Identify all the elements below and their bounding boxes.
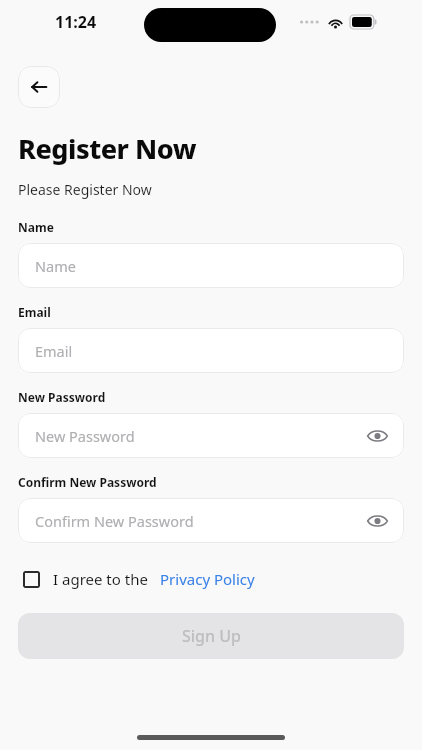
staticText: I agree to the xyxy=(53,569,148,589)
button[interactable]: Back xyxy=(18,66,60,108)
staticText: 11:24 xyxy=(55,11,97,33)
button[interactable]: Show password xyxy=(362,506,392,536)
button[interactable]: New Password xyxy=(18,413,404,458)
staticText: New Password xyxy=(35,426,135,446)
staticText: Privacy Policy xyxy=(160,569,255,589)
button[interactable]: Confirm New Password xyxy=(18,498,404,543)
staticText: Sign Up xyxy=(182,625,241,647)
staticText: Register Now xyxy=(18,130,196,167)
button[interactable]: Sign Up xyxy=(18,613,404,659)
button[interactable]: Privacy Policy xyxy=(160,569,255,589)
staticText: Name xyxy=(18,219,54,235)
button[interactable]: Show password xyxy=(362,421,392,451)
staticText: Email xyxy=(18,304,51,320)
staticText: Email xyxy=(35,341,73,361)
staticText: Confirm New Password xyxy=(35,511,194,531)
button[interactable]: Name xyxy=(18,243,404,288)
staticText: Confirm New Password xyxy=(18,474,157,490)
staticText: Please Register Now xyxy=(18,180,152,199)
staticText: Name xyxy=(35,256,76,276)
button[interactable]: Agree to privacy policy xyxy=(18,566,44,592)
button[interactable]: Email xyxy=(18,328,404,373)
staticText: New Password xyxy=(18,389,106,405)
